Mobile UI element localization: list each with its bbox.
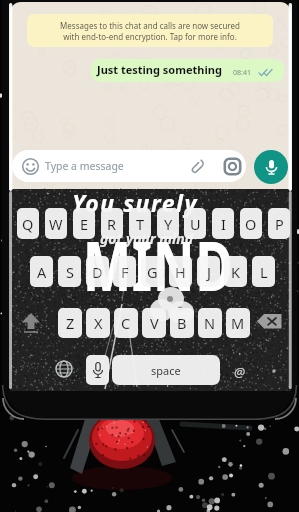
button[interactable]: J (197, 256, 220, 287)
staticText: U (190, 214, 201, 234)
button[interactable]: N (198, 308, 222, 338)
button[interactable]: I (212, 208, 234, 239)
button[interactable]: Messages to this chat and calls are now … (27, 14, 273, 47)
button[interactable]: O (240, 208, 262, 239)
staticText: MIND (83, 218, 234, 309)
staticText: L (260, 262, 268, 282)
staticText: A (37, 262, 47, 282)
staticText: R (107, 214, 117, 234)
button[interactable]: M (226, 308, 250, 338)
staticText: Z (66, 313, 75, 333)
staticText: B (177, 313, 187, 333)
staticText: MIND (83, 218, 234, 309)
button[interactable]: Just testing something (91, 59, 284, 82)
staticText: M (231, 313, 245, 333)
button[interactable]: D (86, 256, 109, 287)
button[interactable]: space (112, 355, 220, 385)
button[interactable] (254, 150, 288, 184)
button[interactable]: Q (17, 208, 39, 239)
button[interactable]: U (184, 208, 206, 239)
button[interactable]: P (268, 208, 290, 239)
staticText: N (204, 313, 216, 333)
staticText: 08:41 (233, 68, 251, 78)
staticText: T (136, 214, 145, 234)
staticText: D (92, 262, 103, 282)
button[interactable]: E (73, 208, 95, 239)
staticText: Y (164, 214, 173, 234)
staticText: space (151, 363, 181, 378)
button[interactable] (55, 360, 73, 378)
button[interactable]: C (114, 308, 138, 338)
staticText: got your mind (100, 229, 194, 248)
staticText: P (275, 214, 284, 234)
button[interactable]: Type a message (12, 150, 246, 182)
staticText: H (175, 262, 186, 282)
button[interactable]: G (141, 256, 164, 287)
button[interactable]: X (86, 308, 110, 338)
button[interactable]: A (30, 256, 53, 287)
button[interactable]: L (252, 256, 275, 287)
button[interactable]: W (45, 208, 67, 239)
staticText: Type a message (45, 159, 124, 173)
button[interactable]: @ (234, 363, 246, 381)
staticText: O (245, 214, 257, 234)
staticText: X (94, 313, 103, 333)
button[interactable] (256, 313, 284, 330)
staticText: W (49, 214, 63, 234)
button[interactable]: S (58, 256, 81, 287)
staticText: Q (22, 214, 34, 234)
staticText: C (121, 313, 131, 333)
staticText: V (150, 313, 159, 333)
button[interactable] (20, 313, 42, 332)
staticText: E (80, 214, 89, 234)
staticText: Messages to this chat and calls are now … (60, 20, 240, 42)
staticText: K (231, 262, 240, 282)
button[interactable]: Y (157, 208, 179, 239)
staticText: Just testing something (97, 62, 222, 77)
button[interactable]: T (129, 208, 151, 239)
staticText: G (147, 262, 158, 282)
button[interactable]: K (224, 256, 247, 287)
button[interactable]: F (113, 256, 136, 287)
staticText: J (207, 262, 211, 282)
button[interactable]: B (170, 308, 194, 338)
staticText: I (221, 214, 226, 234)
button[interactable] (86, 355, 109, 385)
button[interactable]: H (169, 256, 192, 287)
button[interactable]: V (142, 308, 166, 338)
staticText: F (121, 262, 129, 282)
staticText: S (66, 262, 74, 282)
button[interactable]: R (101, 208, 123, 239)
staticText: You surely (72, 187, 198, 218)
button[interactable]: Z (58, 308, 82, 338)
